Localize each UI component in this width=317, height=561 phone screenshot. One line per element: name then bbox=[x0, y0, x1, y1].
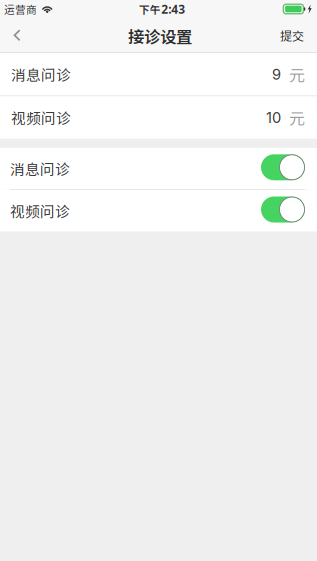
staticText: 元 bbox=[289, 106, 305, 129]
staticText: 运营商 bbox=[4, 1, 37, 17]
staticText: 消息问诊 bbox=[11, 64, 71, 85]
staticText: 视频问诊 bbox=[10, 200, 70, 221]
staticText: 2:43 bbox=[161, 1, 185, 17]
staticText: 消息问诊 bbox=[10, 158, 70, 179]
button[interactable]: 视频问诊 bbox=[0, 190, 317, 231]
button[interactable]: 返回 bbox=[0, 20, 34, 52]
staticText: 提交 bbox=[280, 27, 304, 44]
button[interactable]: 提交 bbox=[273, 20, 311, 52]
staticText: 9 bbox=[272, 65, 281, 83]
staticText: 元 bbox=[289, 63, 305, 86]
staticText: 视频问诊 bbox=[11, 107, 71, 128]
staticText: 接诊设置 bbox=[128, 24, 192, 48]
staticText: 下午 bbox=[139, 1, 161, 17]
button[interactable]: 视频问诊 bbox=[0, 96, 317, 139]
staticText: 10 bbox=[266, 109, 281, 126]
button[interactable]: 消息问诊 bbox=[0, 53, 317, 96]
button[interactable]: 消息问诊 bbox=[0, 148, 317, 189]
